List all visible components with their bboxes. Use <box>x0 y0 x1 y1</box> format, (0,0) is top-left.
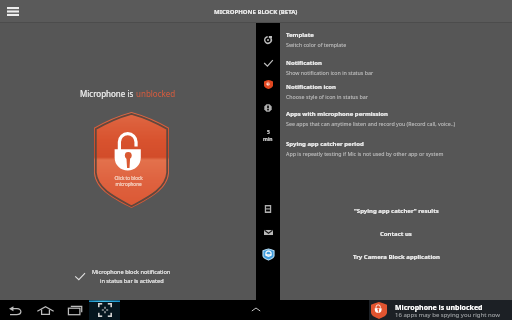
staticText: Microphone is <box>80 88 136 99</box>
button[interactable]: Click to block microphone <box>94 112 169 208</box>
staticText: See apps that can anytime listen and rec… <box>286 120 456 127</box>
staticText: Try Camera Block application <box>353 253 440 261</box>
staticText: in status bar is activated <box>100 277 164 285</box>
staticText: Microphone block notification <box>92 268 171 276</box>
button[interactable]: Spying app catcher results <box>256 198 280 220</box>
staticText: Template <box>286 31 314 39</box>
staticText: App is repeatly testing if Mic is not us… <box>286 150 444 157</box>
button[interactable]: Home <box>31 300 60 320</box>
button[interactable]: Back <box>0 300 31 320</box>
button[interactable]: Template <box>256 29 280 51</box>
staticText: MICROPHONE BLOCK (BETA) <box>214 8 298 16</box>
staticText: Switch color of template <box>286 41 347 48</box>
button[interactable]: Notification <box>286 59 512 76</box>
staticText: Microphone is unblocked <box>395 303 483 313</box>
button[interactable]: Spying app catcher period <box>256 125 280 147</box>
button[interactable]: Screenshot <box>89 300 120 320</box>
staticText: Choose style of icon in status bar <box>286 93 368 100</box>
button[interactable]: Notification icon <box>256 73 280 95</box>
button[interactable]: Template <box>286 31 512 48</box>
button[interactable]: Menu <box>4 0 22 23</box>
staticText: 16 apps may be spying you right now <box>395 311 500 319</box>
button[interactable]: Spying app catcher period <box>286 140 512 157</box>
button[interactable]: Expand status bar <box>246 300 266 320</box>
button[interactable]: Try Camera Block application <box>256 243 280 265</box>
staticText: Apps with microphone permission <box>286 110 389 118</box>
staticText: Spying app catcher period <box>286 140 364 148</box>
staticText: Notification icon <box>286 83 336 91</box>
button[interactable]: Recent apps <box>60 300 89 320</box>
button[interactable]: Contact us <box>256 221 280 243</box>
staticText: Click to block microphone <box>91 175 166 187</box>
staticText: Contact us <box>380 230 412 238</box>
button[interactable]: Microphone is unblocked <box>369 300 512 320</box>
button[interactable]: Try Camera Block application <box>280 250 512 264</box>
button[interactable]: Apps with microphone permission <box>286 110 512 127</box>
button[interactable]: Contact us <box>280 227 512 241</box>
button[interactable]: Notification <box>256 52 280 74</box>
staticText: "Spying app catcher" results <box>354 207 439 215</box>
staticText: unblocked <box>136 88 176 99</box>
button[interactable]: Notification icon <box>286 83 512 100</box>
button[interactable]: Apps with microphone permission <box>256 97 280 119</box>
staticText: min <box>263 136 273 143</box>
staticText: Notification <box>286 59 322 67</box>
staticText: 5 <box>267 129 270 136</box>
button[interactable]: "Spying app catcher" results <box>280 204 512 218</box>
staticText: Show notification icon in status bar <box>286 69 374 76</box>
